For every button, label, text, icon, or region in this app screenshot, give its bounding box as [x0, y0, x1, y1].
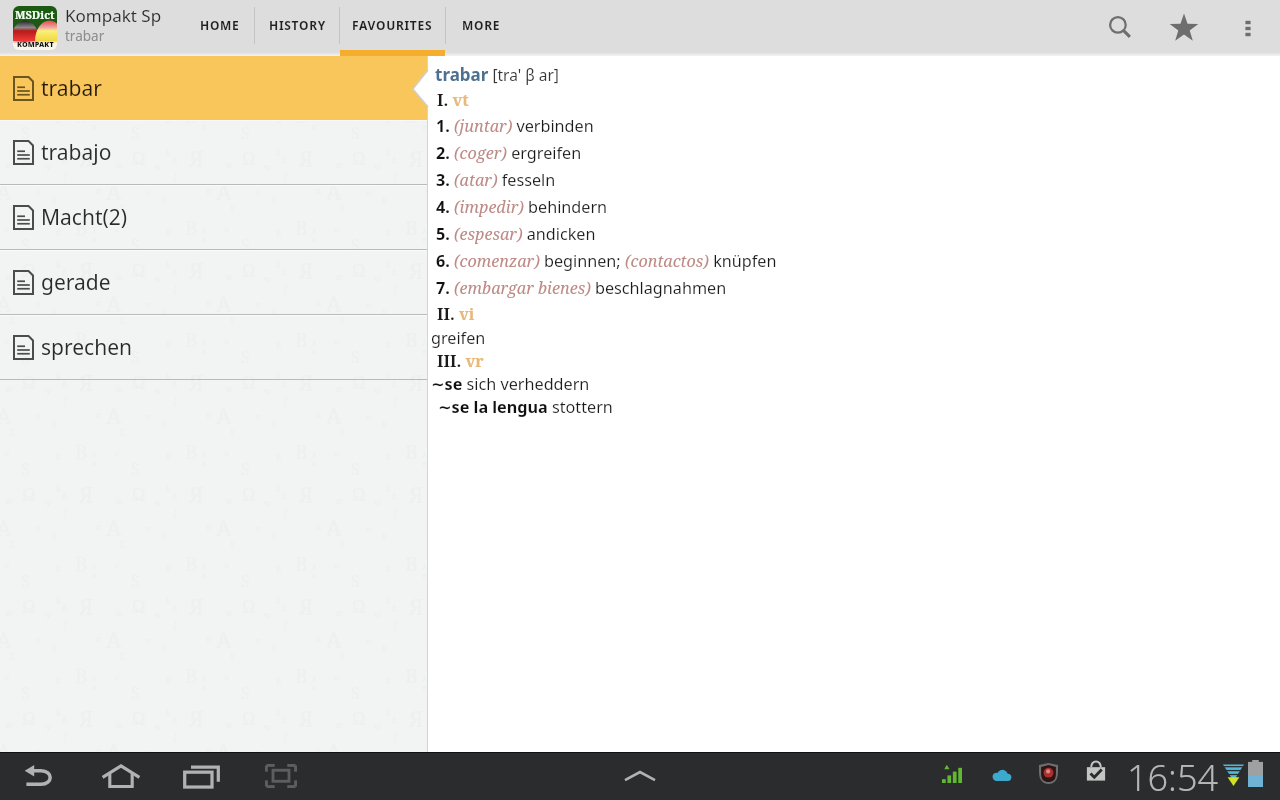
button[interactable]: MORE: [446, 0, 516, 56]
staticText: 7. (embargar bienes) beschlagnahmen: [436, 277, 727, 299]
staticText: FAVOURITES: [352, 17, 433, 33]
staticText: 1. (juntar) verbinden: [436, 115, 594, 137]
button[interactable]: Macht(2): [0, 185, 427, 250]
staticText: trabar: [41, 74, 102, 103]
staticText: HISTORY: [269, 17, 326, 33]
button[interactable]: Recent apps: [161, 752, 241, 800]
staticText: ∼se la lengua stottern: [438, 396, 613, 418]
button[interactable]: FAVOURITES: [340, 0, 445, 56]
button[interactable]: HOME: [186, 0, 254, 56]
button[interactable]: Show navigation: [610, 752, 670, 800]
staticText: III. vr: [437, 350, 484, 372]
staticText: trabajo: [41, 138, 112, 167]
button[interactable]: Search: [1088, 0, 1152, 56]
staticText: sprechen: [41, 333, 132, 362]
staticText: trabar: [65, 27, 105, 45]
staticText: 5. (espesar) andicken: [436, 223, 596, 245]
staticText: 16:54: [1127, 753, 1219, 800]
staticText: 3. (atar) fesseln: [436, 169, 556, 191]
staticText: HOME: [200, 17, 240, 33]
staticText: MSDict: [15, 7, 55, 22]
staticText: Kompakt Sp: [65, 4, 162, 27]
button[interactable]: Back: [1, 752, 81, 800]
staticText: MORE: [462, 17, 501, 33]
staticText: trabar [tra' β ar]: [435, 63, 559, 86]
button[interactable]: More options: [1216, 0, 1280, 56]
staticText: Macht(2): [41, 203, 128, 232]
button[interactable]: trabajo: [0, 120, 427, 185]
button[interactable]: trabar: [0, 56, 427, 120]
staticText: gerade: [41, 268, 111, 297]
button[interactable]: HISTORY: [255, 0, 339, 56]
staticText: II. vi: [437, 303, 475, 325]
staticText: 4. (impedir) behindern: [436, 196, 608, 218]
button[interactable]: Favourites: [1152, 0, 1216, 56]
staticText: I. vt: [437, 89, 469, 111]
staticText: ∼se sich verheddern: [431, 373, 590, 395]
staticText: KOMPAKT: [17, 39, 54, 49]
staticText: 2. (coger) ergreifen: [436, 142, 582, 164]
button[interactable]: Screenshot: [241, 752, 321, 800]
button[interactable]: Home: [81, 752, 161, 800]
button[interactable]: sprechen: [0, 315, 427, 380]
staticText: 6. (comenzar) beginnen; (contactos) knüp…: [436, 250, 777, 272]
staticText: greifen: [431, 327, 486, 349]
button[interactable]: gerade: [0, 250, 427, 315]
